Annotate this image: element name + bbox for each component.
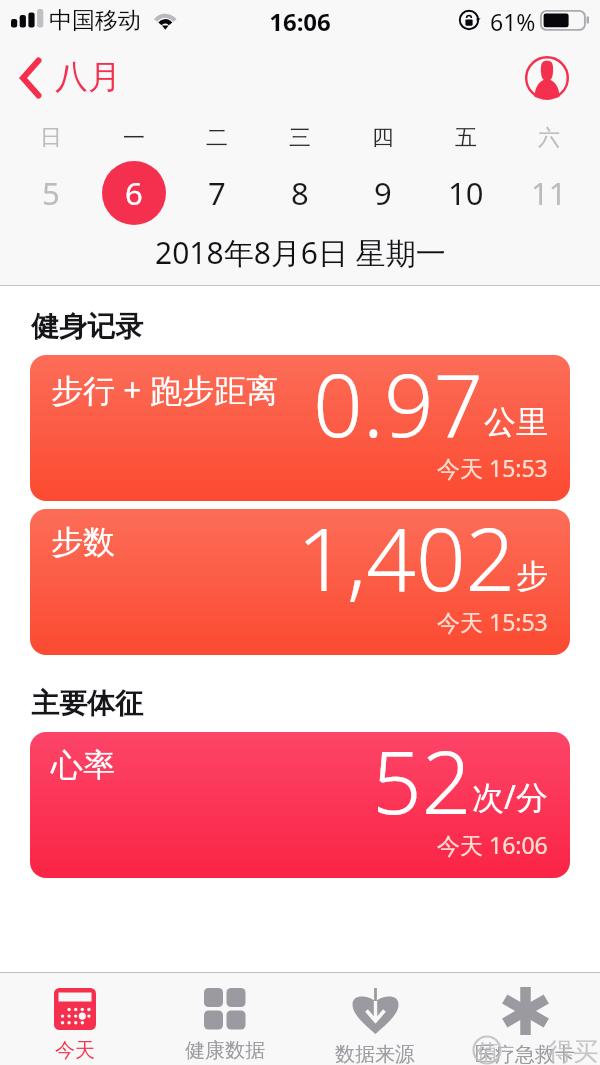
- staticText: 今天 15:53: [437, 452, 548, 483]
- staticText: 52: [372, 732, 472, 839]
- button[interactable]: 步行 + 跑步距离: [30, 355, 570, 501]
- staticText: 心率: [51, 745, 115, 785]
- staticText: 8: [291, 172, 309, 214]
- staticText: 主要体征: [31, 686, 143, 721]
- button[interactable]: 步数: [30, 509, 570, 655]
- staticText: 八月: [55, 56, 121, 98]
- staticText: 日: [40, 124, 62, 152]
- staticText: 1,402: [297, 509, 516, 616]
- staticText: 六: [538, 124, 560, 152]
- staticText: 五: [455, 124, 477, 152]
- staticText: 步: [516, 556, 548, 596]
- staticText: 今天 16:06: [437, 829, 548, 860]
- staticText: 中国移动: [49, 6, 141, 35]
- staticText: 步数: [51, 522, 115, 562]
- staticText: 健康数据: [185, 1038, 265, 1063]
- staticText: 今天 15:53: [437, 606, 548, 637]
- staticText: 医疗急救卡: [475, 1042, 575, 1065]
- button[interactable]: 今天: [0, 973, 150, 1065]
- staticText: 二: [206, 124, 228, 152]
- button[interactable]: 8: [258, 156, 341, 230]
- button[interactable]: 医疗急救卡: [450, 973, 600, 1065]
- staticText: 值: [476, 1038, 499, 1065]
- staticText: 三: [289, 124, 311, 152]
- button[interactable]: 11: [507, 156, 590, 230]
- staticText: 今天: [55, 1038, 95, 1063]
- staticText: 61%: [490, 6, 536, 37]
- button[interactable]: 10: [424, 156, 507, 230]
- button[interactable]: 八月: [6, 54, 133, 102]
- button[interactable]: 5: [10, 156, 92, 230]
- staticText: 16:06: [0, 5, 600, 38]
- staticText: 10: [448, 172, 484, 214]
- staticText: 9: [374, 172, 392, 214]
- staticText: 健身记录: [31, 309, 143, 344]
- staticText: 四: [372, 124, 394, 152]
- staticText: 一: [123, 124, 145, 152]
- staticText: 6: [125, 172, 143, 214]
- staticText: 次/分: [472, 775, 548, 819]
- staticText: 5: [42, 172, 60, 214]
- button[interactable]: 心率: [30, 732, 570, 878]
- button[interactable]: 6: [92, 156, 175, 230]
- button[interactable]: 健康数据: [150, 973, 300, 1065]
- button[interactable]: 9: [341, 156, 424, 230]
- staticText: 步行 + 跑步距离: [51, 368, 278, 412]
- staticText: 数据来源: [335, 1042, 415, 1065]
- staticText: 7: [208, 172, 226, 214]
- staticText: 0.97: [313, 355, 484, 462]
- staticText: 2018年8月6日 星期一: [155, 232, 446, 273]
- button[interactable]: Profile: [524, 55, 570, 101]
- staticText: 11: [531, 172, 567, 214]
- staticText: 得买: [548, 1036, 598, 1065]
- staticText: 公里: [484, 402, 548, 442]
- button[interactable]: 7: [175, 156, 258, 230]
- button[interactable]: 数据来源: [300, 973, 450, 1065]
